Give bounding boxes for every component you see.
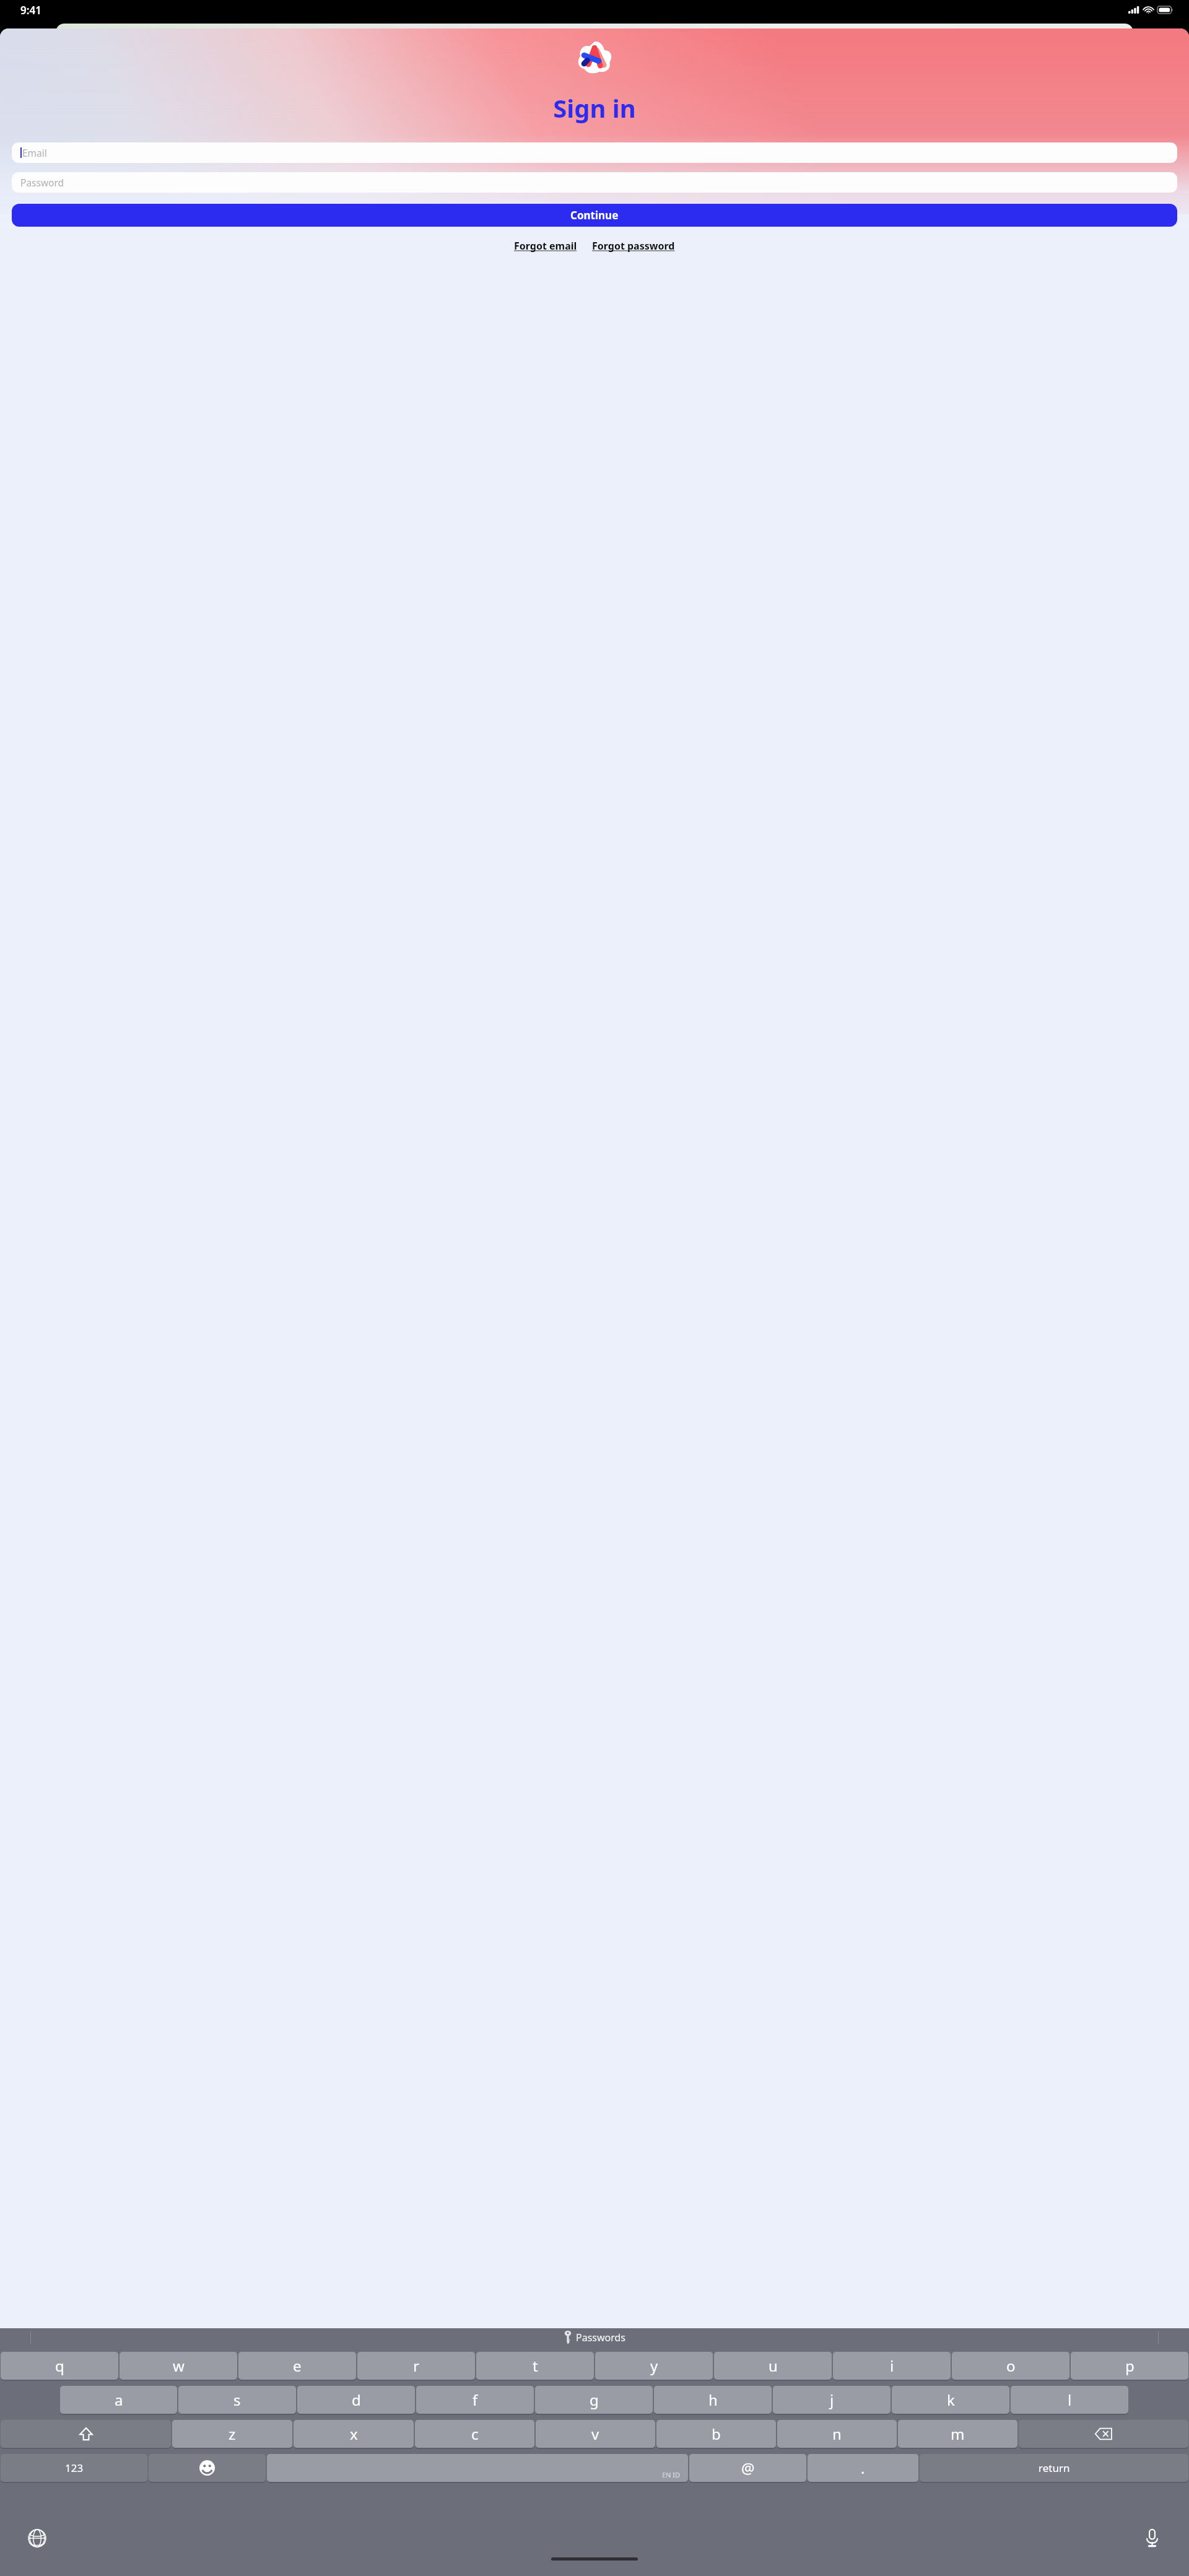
button[interactable]: q	[1, 2352, 118, 2381]
button[interactable]: Email	[12, 142, 1177, 163]
staticText: f	[473, 2390, 478, 2410]
staticText: Email	[22, 146, 47, 159]
button[interactable]: y	[595, 2352, 713, 2381]
staticText: Forgot password	[592, 239, 675, 253]
button[interactable]: return	[920, 2454, 1188, 2483]
button[interactable]: f	[416, 2386, 534, 2415]
button[interactable]: Password	[12, 172, 1177, 193]
button[interactable]: Passwords	[564, 2331, 626, 2344]
button[interactable]: Continue	[12, 204, 1177, 227]
button[interactable]: d	[297, 2386, 415, 2415]
staticText: b	[712, 2424, 721, 2444]
staticText: l	[1068, 2390, 1072, 2410]
staticText: v	[591, 2424, 599, 2444]
staticText: Forgot email	[514, 239, 577, 253]
staticText: r	[413, 2356, 419, 2376]
button[interactable]: m	[898, 2420, 1017, 2449]
button[interactable]: Emoji	[149, 2454, 266, 2483]
button[interactable]: @	[689, 2454, 806, 2483]
staticText: a	[115, 2390, 123, 2410]
button[interactable]: Shift	[1, 2420, 171, 2449]
button[interactable]: x	[294, 2420, 414, 2449]
staticText: g	[590, 2390, 599, 2410]
staticText: o	[1006, 2356, 1016, 2376]
staticText: Continue	[570, 208, 619, 222]
button[interactable]: o	[952, 2352, 1069, 2381]
button[interactable]: Space	[267, 2454, 688, 2483]
button[interactable]: p	[1071, 2352, 1188, 2381]
button[interactable]: n	[777, 2420, 897, 2449]
button[interactable]: j	[773, 2386, 891, 2415]
button[interactable]: Forgot password	[592, 238, 675, 254]
button[interactable]: u	[714, 2352, 832, 2381]
staticText: j	[830, 2390, 834, 2410]
button[interactable]: v	[536, 2420, 655, 2449]
staticText: .	[861, 2458, 865, 2478]
button[interactable]: l	[1011, 2386, 1128, 2415]
button[interactable]: g	[535, 2386, 653, 2415]
staticText: u	[769, 2356, 778, 2376]
button[interactable]: 123	[1, 2454, 147, 2483]
staticText: c	[471, 2424, 479, 2444]
staticText: Sign in	[553, 91, 636, 124]
staticText: Passwords	[576, 2331, 626, 2344]
button[interactable]: t	[476, 2352, 594, 2381]
staticText: @	[741, 2458, 755, 2478]
button[interactable]: .	[808, 2454, 918, 2483]
button[interactable]: b	[656, 2420, 776, 2449]
staticText: t	[533, 2356, 538, 2376]
button[interactable]: h	[654, 2386, 772, 2415]
button[interactable]: Change keyboard language	[25, 2526, 50, 2551]
button[interactable]: a	[60, 2386, 177, 2415]
staticText: z	[229, 2424, 236, 2444]
button[interactable]: Backspace	[1019, 2420, 1188, 2449]
button[interactable]: e	[238, 2352, 356, 2381]
staticText: 9:41	[20, 3, 41, 17]
staticText: k	[947, 2390, 955, 2410]
staticText: w	[173, 2356, 185, 2376]
staticText: return	[1039, 2461, 1070, 2475]
staticText: EN ID	[662, 2470, 681, 2479]
button[interactable]: k	[892, 2386, 1009, 2415]
staticText: p	[1125, 2356, 1135, 2376]
staticText: m	[951, 2424, 965, 2444]
button[interactable]: i	[833, 2352, 951, 2381]
staticText: 123	[65, 2461, 84, 2475]
button[interactable]: r	[357, 2352, 475, 2381]
button[interactable]: s	[178, 2386, 296, 2415]
staticText: h	[708, 2390, 718, 2410]
staticText: d	[352, 2390, 361, 2410]
button[interactable]: Dictation	[1139, 2526, 1164, 2551]
staticText: n	[832, 2424, 842, 2444]
button[interactable]: Forgot email	[514, 238, 577, 254]
staticText: x	[350, 2424, 358, 2444]
staticText: q	[55, 2356, 64, 2376]
button[interactable]: w	[120, 2352, 237, 2381]
staticText: Password	[20, 176, 64, 189]
staticText: e	[293, 2356, 302, 2376]
button[interactable]: c	[415, 2420, 534, 2449]
staticText: y	[650, 2356, 658, 2376]
button[interactable]: z	[172, 2420, 292, 2449]
staticText: i	[890, 2356, 894, 2376]
staticText: s	[233, 2390, 241, 2410]
